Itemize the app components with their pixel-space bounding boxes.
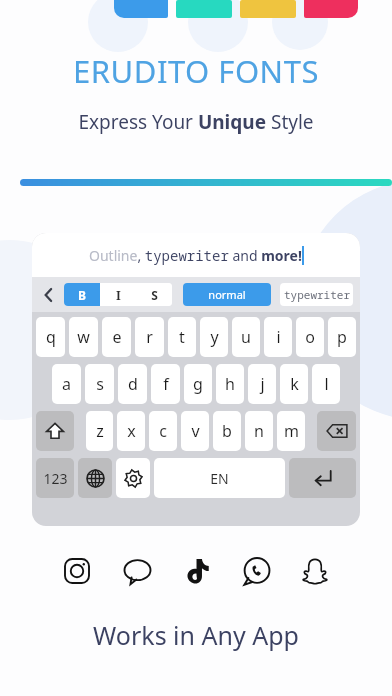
button[interactable]: k [280, 364, 308, 404]
staticText: k [290, 373, 299, 395]
button[interactable]: g [184, 364, 212, 404]
button[interactable]: m [277, 411, 305, 451]
staticText: s [96, 373, 104, 395]
button[interactable]: n [245, 411, 273, 451]
button[interactable]: f [151, 364, 180, 404]
button[interactable]: I [100, 283, 136, 306]
button[interactable]: c [149, 411, 177, 451]
button[interactable]: B [64, 283, 100, 306]
staticText: p [337, 326, 347, 348]
button[interactable]: w [69, 317, 98, 357]
button[interactable]: t [168, 317, 196, 357]
staticText: typewriter [284, 287, 350, 302]
button[interactable]: Shift [36, 411, 74, 451]
button[interactable]: u [232, 317, 260, 357]
button[interactable]: WhatsApp [239, 554, 273, 588]
button[interactable]: d [118, 364, 147, 404]
staticText: o [305, 326, 315, 348]
button[interactable]: TikTok [179, 554, 213, 588]
button[interactable]: Backspace [317, 411, 356, 451]
staticText: y [210, 326, 219, 348]
button[interactable]: Instagram [60, 554, 94, 588]
staticText: x [127, 420, 136, 442]
staticText: Works in Any App [0, 618, 392, 652]
staticText: l [324, 373, 329, 395]
staticText: S [151, 287, 158, 303]
staticText: h [225, 373, 235, 395]
button[interactable]: q [36, 317, 65, 357]
staticText: 123 [43, 469, 68, 488]
button[interactable]: Change language [78, 458, 112, 498]
button[interactable]: l [312, 364, 340, 404]
staticText: m [284, 420, 299, 442]
staticText: j [260, 373, 265, 395]
button[interactable]: typewriter [280, 283, 353, 306]
staticText: w [77, 326, 90, 348]
button[interactable]: j [248, 364, 276, 404]
staticText: q [46, 326, 56, 348]
button[interactable]: p [328, 317, 356, 357]
button[interactable]: i [264, 317, 292, 357]
staticText: normal [208, 287, 246, 302]
button[interactable]: Back [39, 285, 59, 305]
staticText: ERUDITO FONTS [0, 50, 392, 92]
button[interactable]: Settings [116, 458, 150, 498]
staticText: i [276, 326, 281, 348]
button[interactable]: Snapchat [298, 554, 332, 588]
button[interactable]: x [117, 411, 145, 451]
staticText: EN [210, 469, 229, 488]
staticText: f [163, 373, 169, 395]
button[interactable]: b [213, 411, 241, 451]
button[interactable]: v [181, 411, 209, 451]
button[interactable]: r [135, 317, 164, 357]
staticText: B [78, 287, 86, 303]
button[interactable]: z [86, 411, 113, 451]
staticText: n [254, 420, 264, 442]
button[interactable]: Enter [289, 458, 356, 498]
button[interactable]: s [85, 364, 114, 404]
button[interactable]: Messages [120, 554, 154, 588]
staticText: I [116, 287, 121, 303]
button[interactable]: a [52, 364, 81, 404]
staticText: c [159, 420, 167, 442]
button[interactable]: o [296, 317, 324, 357]
button[interactable]: e [102, 317, 131, 357]
staticText: Express Your Unique Style [0, 109, 392, 135]
staticText: z [96, 420, 104, 442]
button[interactable]: y [200, 317, 228, 357]
button[interactable]: S [136, 283, 172, 306]
button[interactable]: normal [183, 283, 271, 306]
button[interactable]: 123 [36, 458, 74, 498]
staticText: e [112, 326, 122, 348]
button[interactable]: h [216, 364, 244, 404]
staticText: b [222, 420, 232, 442]
staticText: d [128, 373, 138, 395]
button[interactable]: EN [154, 458, 285, 498]
staticText: v [191, 420, 200, 442]
staticText: t [179, 326, 185, 348]
staticText: u [241, 326, 251, 348]
staticText: g [193, 373, 203, 395]
staticText: r [146, 326, 153, 348]
staticText: Outline, typewriter and more! [89, 246, 302, 265]
staticText: a [62, 373, 71, 395]
